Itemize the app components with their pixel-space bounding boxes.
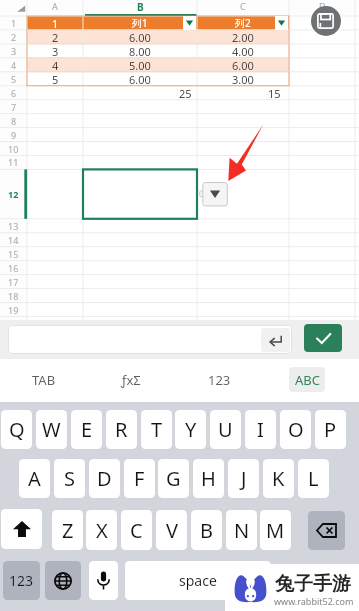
button[interactable]: Q [1,410,32,449]
staticText: 5.00 [129,58,151,72]
staticText: 6.00 [232,58,254,72]
button[interactable]: N [226,510,257,550]
button[interactable]: Confirm [304,324,342,352]
button[interactable]: Voice input [89,561,118,600]
staticText: 13 [8,220,19,232]
staticText: A [52,0,58,12]
button[interactable]: L [298,459,329,498]
staticText: ƒxΣ [121,371,141,389]
button[interactable]: Save [311,6,341,36]
button[interactable]: Change language [45,561,81,600]
button[interactable]: W [36,410,67,449]
button[interactable]: TAB [26,367,62,392]
staticText: 列2 [235,16,251,30]
staticText: X [96,517,108,544]
staticText: 10 [8,143,19,155]
button[interactable]: C [121,510,152,550]
staticText: Z [62,517,74,544]
button[interactable]: Shift [1,509,42,549]
staticText: D [319,0,326,12]
staticText: B [137,0,144,12]
staticText: 8 [11,115,17,127]
button[interactable]: V [156,510,187,550]
button[interactable]: S [54,459,85,498]
button[interactable]: Cell dropdown [199,181,229,207]
staticText: B [200,517,213,544]
button[interactable]: J [228,459,259,498]
button[interactable]: Y [175,410,206,449]
button[interactable]: M [260,510,291,550]
staticText: 16 [8,262,19,274]
button[interactable]: Backspace [308,511,345,550]
staticText: V [166,517,178,544]
button[interactable]: K [263,459,294,498]
staticText: F [134,465,145,492]
staticText: 15 [8,248,19,260]
staticText: 5 [52,72,59,86]
staticText: 2 [52,30,59,44]
button[interactable]: H [193,459,224,498]
button[interactable]: I [245,410,276,449]
button[interactable]: E [71,410,102,449]
staticText: www.rabbit52.com [274,595,354,607]
staticText: 18 [8,290,19,302]
button[interactable]: Z [52,510,83,550]
staticText: 11 [8,156,19,168]
staticText: A [28,465,41,492]
staticText: 123 [208,371,231,389]
button[interactable]: G [158,459,189,498]
staticText: N [234,517,250,544]
staticText: 15 [268,86,281,100]
staticText: D [97,465,112,492]
staticText: K [272,465,285,492]
button[interactable]: space [125,561,271,600]
button[interactable]: T [141,410,172,449]
staticText: 9 [11,129,17,141]
button[interactable]: Filter [275,16,288,30]
staticText: 2 [11,31,17,43]
staticText: Q [9,416,25,443]
staticText: L [308,465,319,492]
button[interactable]: U [210,410,241,449]
staticText: 列1 [132,16,148,30]
button[interactable]: F [124,459,155,498]
button[interactable]: Filter [183,16,196,30]
button[interactable]: X [86,510,117,550]
staticText: 3 [52,44,59,58]
staticText: T [151,416,163,443]
staticText: 2.00 [232,30,254,44]
staticText: J [241,465,247,492]
staticText: 5 [11,73,17,85]
staticText: 4 [52,58,59,72]
staticText: 6.00 [129,72,151,86]
staticText: space [179,571,217,590]
staticText: U [218,416,233,443]
staticText: 19 [8,304,19,316]
button[interactable]: 123 [201,367,237,392]
staticText: Y [185,416,197,443]
button[interactable]: ABC [289,367,325,392]
button[interactable]: O [280,410,311,449]
staticText: 1 [52,16,59,30]
staticText: 8.00 [129,44,151,58]
staticText: 123 [9,571,34,590]
button[interactable]: ƒxΣ [113,367,149,392]
button[interactable]: B [191,510,222,550]
staticText: 12 [8,188,19,200]
staticText: R [115,416,128,443]
button[interactable]: Enter [8,325,292,354]
button[interactable]: Enter [261,328,290,352]
button[interactable]: P [315,410,346,449]
staticText: I [257,416,264,443]
button[interactable]: R [106,410,137,449]
staticText: S [64,465,75,492]
button[interactable]: D [89,459,120,498]
staticText: G [166,465,181,492]
staticText: C [130,517,143,544]
staticText: 1 [11,17,17,29]
staticText: 6 [11,87,17,99]
staticText: C [240,0,246,12]
staticText: 兔子手游 [275,572,351,596]
button[interactable]: A [19,459,50,498]
button[interactable]: 123 [3,561,40,600]
